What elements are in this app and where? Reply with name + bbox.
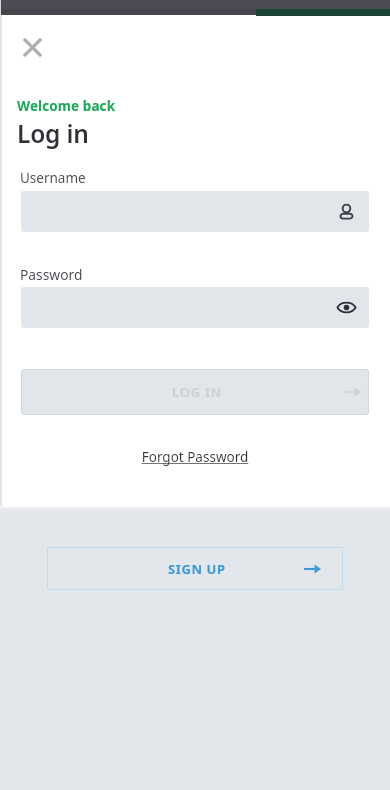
staticText: Password <box>20 265 83 284</box>
staticText: LOG IN <box>172 383 222 401</box>
button[interactable]: LOG IN <box>21 369 369 415</box>
staticText: Welcome back <box>17 97 116 115</box>
button[interactable]: Close <box>18 33 46 61</box>
staticText: Log in <box>17 117 89 150</box>
button[interactable]: Username field <box>21 191 369 232</box>
button[interactable]: Password field <box>21 287 369 328</box>
button[interactable]: Forgot Password <box>0 448 390 466</box>
staticText: SIGN UP <box>168 560 226 578</box>
staticText: Username <box>20 169 86 187</box>
button[interactable]: SIGN UP <box>47 547 343 590</box>
